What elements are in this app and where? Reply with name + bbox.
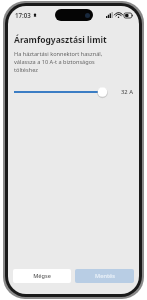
staticText: 32 A [121, 88, 133, 96]
staticText: Mégse [33, 272, 51, 280]
button[interactable]: Mentés [75, 269, 134, 283]
staticText: Mentés [95, 272, 115, 280]
staticText: Ha háztartási konnektort használ, válass… [14, 50, 103, 74]
button[interactable]: Mégse [13, 269, 71, 283]
staticText: Áramfogyasztási limit [14, 34, 107, 46]
button[interactable] [14, 84, 116, 100]
staticText: 17:03 [15, 11, 31, 19]
